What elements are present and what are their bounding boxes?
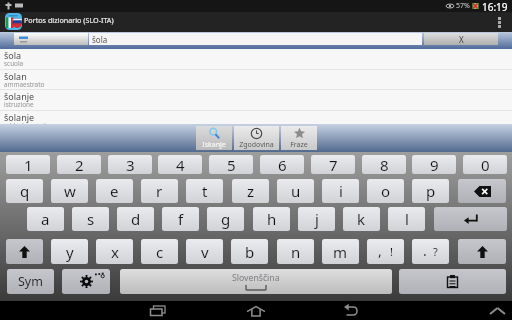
staticText: z [247, 181, 255, 201]
button[interactable]: m [322, 239, 359, 264]
button[interactable]: u [277, 179, 314, 203]
button[interactable]: i [322, 179, 359, 203]
staticText: 16:19 [482, 0, 508, 12]
button[interactable]: Dictionary direction [14, 33, 88, 45]
staticText: 6 [278, 155, 287, 174]
button[interactable]: X [424, 33, 498, 45]
button[interactable]: šolanje [0, 90, 512, 111]
button[interactable]: More options [491, 12, 507, 33]
other: Shift [19, 246, 30, 258]
staticText: 9 [430, 155, 439, 174]
button[interactable]: 2 [57, 155, 101, 174]
staticText: , [378, 241, 382, 259]
button[interactable]: z [232, 179, 269, 203]
button[interactable]: šola [0, 49, 512, 70]
staticText: n [291, 242, 301, 262]
button[interactable]: x [96, 239, 133, 264]
button[interactable]: 7 [311, 155, 355, 174]
staticText: 4 [176, 155, 185, 174]
button[interactable]: h [253, 207, 290, 231]
staticText: 5 [227, 155, 236, 174]
other: Shift [477, 246, 488, 258]
staticText: o [381, 181, 391, 201]
staticText: k [357, 209, 366, 229]
button[interactable]: Settings [62, 269, 110, 294]
staticText: Sym [18, 273, 43, 290]
button[interactable]: Back [333, 301, 369, 320]
staticText: b [245, 242, 255, 262]
button[interactable]: e [96, 179, 133, 203]
button[interactable]: 0 [463, 155, 507, 174]
button[interactable]: w [51, 179, 88, 203]
button[interactable]: j [298, 207, 335, 231]
button[interactable]: y [51, 239, 88, 264]
staticText: 0 [481, 155, 490, 174]
button[interactable]: . [412, 239, 449, 264]
staticText: a [41, 209, 50, 229]
staticText: Zgodovina [239, 140, 274, 150]
button[interactable]: n [277, 239, 314, 264]
button[interactable]: Backspace [458, 179, 506, 203]
staticText: 7 [329, 155, 338, 174]
staticText: Iskanje [202, 140, 226, 150]
button[interactable]: Space [120, 269, 392, 294]
button[interactable]: šola [89, 33, 422, 45]
staticText: j [315, 209, 319, 229]
button[interactable]: 4 [158, 155, 202, 174]
staticText: g [221, 209, 231, 229]
button[interactable]: t [186, 179, 223, 203]
staticText: p [426, 181, 436, 201]
staticText: Portos dizionario (SLO-ITA) [24, 15, 114, 25]
button[interactable]: k [343, 207, 380, 231]
button[interactable]: šolanje [0, 111, 512, 132]
button[interactable]: v [186, 239, 223, 264]
staticText: 8 [380, 155, 389, 174]
button[interactable]: Iskanje [196, 126, 232, 150]
button[interactable]: f [162, 207, 199, 231]
staticText: addestramento [4, 121, 51, 130]
button[interactable]: r [141, 179, 178, 203]
staticText: šolanje [4, 90, 35, 102]
button[interactable]: c [141, 239, 178, 264]
button[interactable]: o [367, 179, 404, 203]
button[interactable]: Clipboard [399, 269, 506, 294]
button[interactable]: d [117, 207, 154, 231]
staticText: f [178, 209, 184, 229]
staticText: m [333, 242, 348, 262]
button[interactable]: Fraze [281, 126, 317, 150]
button[interactable]: Hide keyboard [482, 301, 512, 320]
button[interactable]: g [207, 207, 244, 231]
button[interactable]: šolan [0, 70, 512, 91]
button[interactable]: Home [238, 301, 274, 320]
staticText: r [156, 181, 163, 201]
staticText: šolanje [4, 111, 35, 123]
button[interactable]: 3 [108, 155, 152, 174]
staticText: l [405, 209, 409, 229]
staticText: istruzione [4, 100, 34, 109]
button[interactable]: s [72, 207, 109, 231]
button[interactable]: 5 [209, 155, 253, 174]
button[interactable]: a [27, 207, 64, 231]
staticText: 1 [24, 155, 33, 174]
staticText: ? [433, 244, 438, 259]
button[interactable]: 1 [6, 155, 50, 174]
button[interactable]: b [231, 239, 268, 264]
button[interactable]: p [412, 179, 449, 203]
button[interactable]: Recent apps [140, 301, 176, 320]
button[interactable]: 6 [260, 155, 304, 174]
button[interactable]: 8 [362, 155, 406, 174]
button[interactable]: 9 [412, 155, 456, 174]
button[interactable]: q [6, 179, 43, 203]
button[interactable]: l [388, 207, 425, 231]
button[interactable]: Shift [6, 239, 43, 264]
staticText: ammaestrato [4, 80, 45, 89]
button[interactable]: Shift [458, 239, 506, 264]
button[interactable]: Sym [7, 269, 54, 294]
button[interactable]: Zgodovina [234, 126, 279, 150]
staticText: u [291, 181, 301, 201]
button[interactable]: Enter [434, 207, 507, 231]
staticText: šola [92, 34, 108, 45]
staticText: Fraze [290, 140, 308, 150]
staticText: 57% [456, 1, 470, 11]
button[interactable]: , [367, 239, 404, 264]
